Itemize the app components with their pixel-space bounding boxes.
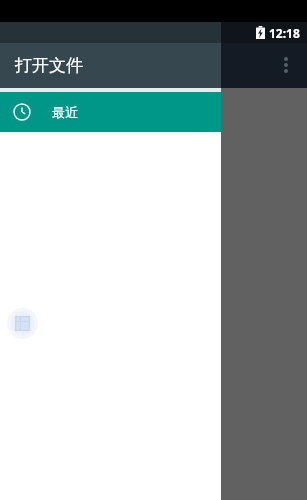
- button[interactable]: More options: [274, 46, 298, 84]
- button[interactable]: 最近: [0, 92, 221, 132]
- staticText: 最近: [52, 104, 78, 120]
- staticText: 12:18: [269, 25, 300, 41]
- staticText: 打开文件: [15, 55, 83, 76]
